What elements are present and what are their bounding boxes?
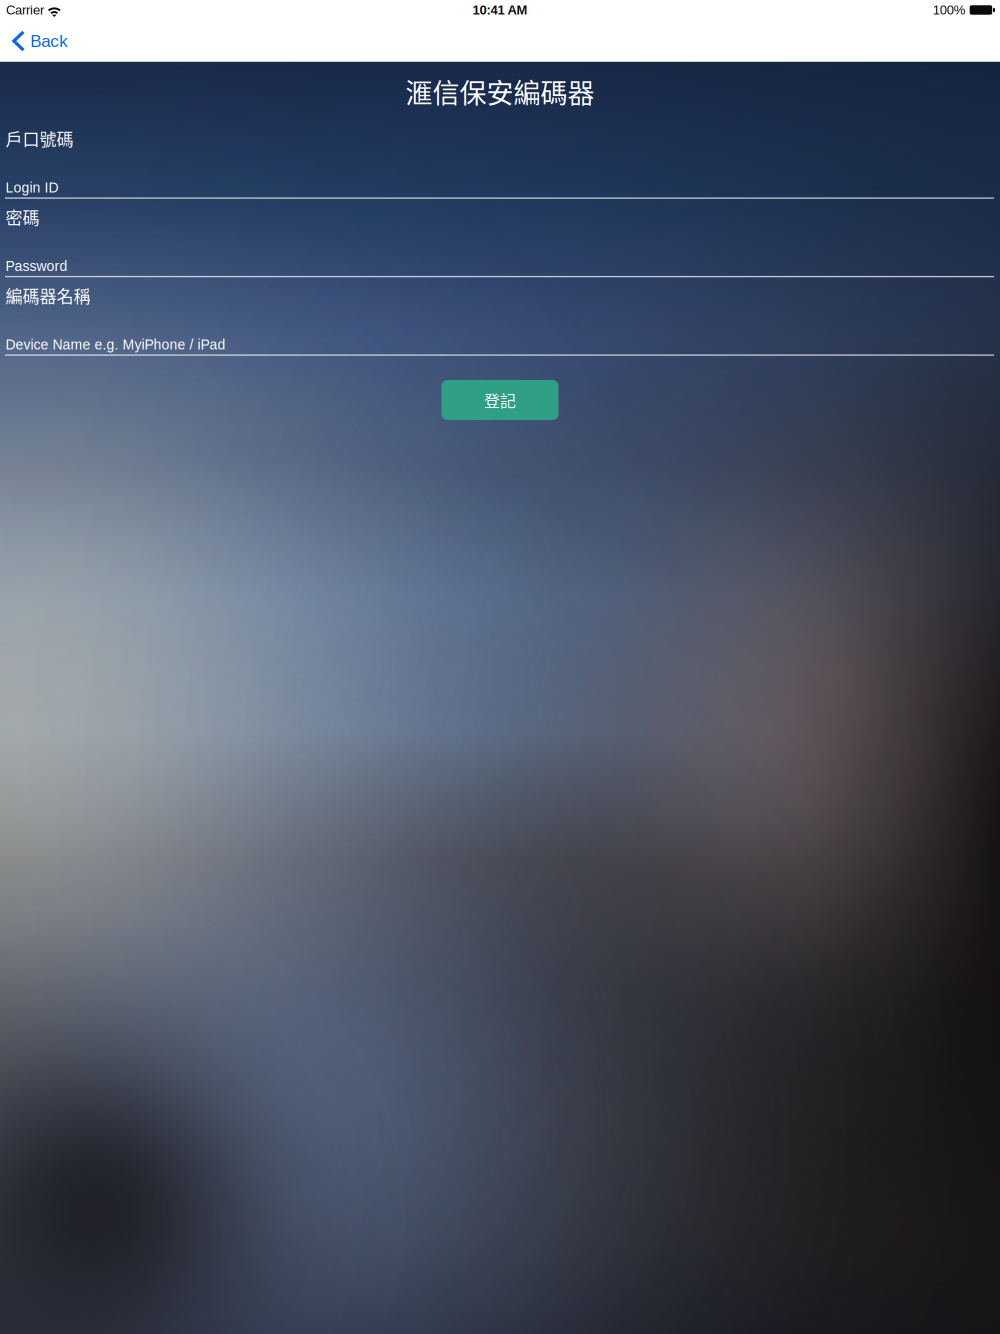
staticText: Login ID [5,180,58,195]
button[interactable]: Back [0,20,80,62]
staticText: 滙信保安編碼器 [405,72,594,111]
staticText: Carrier [6,3,44,17]
button[interactable]: 登記 [441,380,558,420]
staticText: Password [5,258,67,274]
staticText: 編碼器名稱 [5,283,90,307]
staticText: 10:41 AM [472,3,527,17]
staticText: 登記 [484,388,516,412]
staticText: 戶口號碼 [5,126,73,150]
staticText: Back [30,31,68,50]
staticText: 100% [933,3,966,17]
staticText: 密碼 [5,204,39,229]
staticText: Device Name e.g. MyiPhone / iPad [5,337,225,352]
